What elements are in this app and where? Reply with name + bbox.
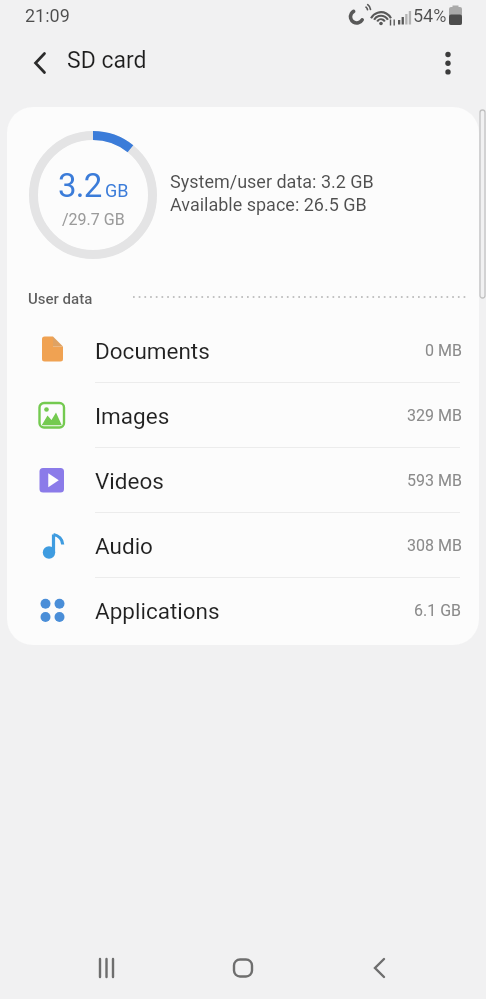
staticText: GB (105, 180, 129, 201)
staticText: SD card (67, 47, 147, 74)
button[interactable] (428, 43, 468, 83)
button[interactable] (83, 944, 131, 992)
staticText: Videos (95, 468, 164, 494)
staticText: 593 MB (407, 471, 462, 490)
button[interactable] (219, 944, 267, 992)
staticText: 329 MB (407, 406, 462, 425)
staticText: 21:09 (25, 5, 70, 26)
staticText: User data (28, 290, 93, 308)
staticText: Applications (95, 598, 220, 624)
staticText: 3.2 (58, 166, 102, 205)
staticText: 54% (413, 5, 447, 26)
button[interactable]: Audio (7, 513, 479, 578)
staticText: Documents (95, 338, 210, 364)
staticText: 6.1 GB (414, 601, 462, 620)
staticText: Available space: 26.5 GB (170, 194, 367, 215)
button[interactable]: Documents (7, 318, 479, 383)
button[interactable] (20, 43, 60, 83)
staticText: Images (95, 403, 170, 429)
button[interactable] (356, 944, 404, 992)
staticText: System/user data: 3.2 GB (170, 171, 374, 192)
button[interactable]: Images (7, 383, 479, 448)
button[interactable]: Applications (7, 578, 479, 643)
staticText: 0 MB (425, 341, 462, 360)
button[interactable]: Videos (7, 448, 479, 513)
staticText: Audio (95, 533, 153, 559)
staticText: 308 MB (407, 536, 462, 555)
staticText: /29.7 GB (62, 210, 125, 229)
